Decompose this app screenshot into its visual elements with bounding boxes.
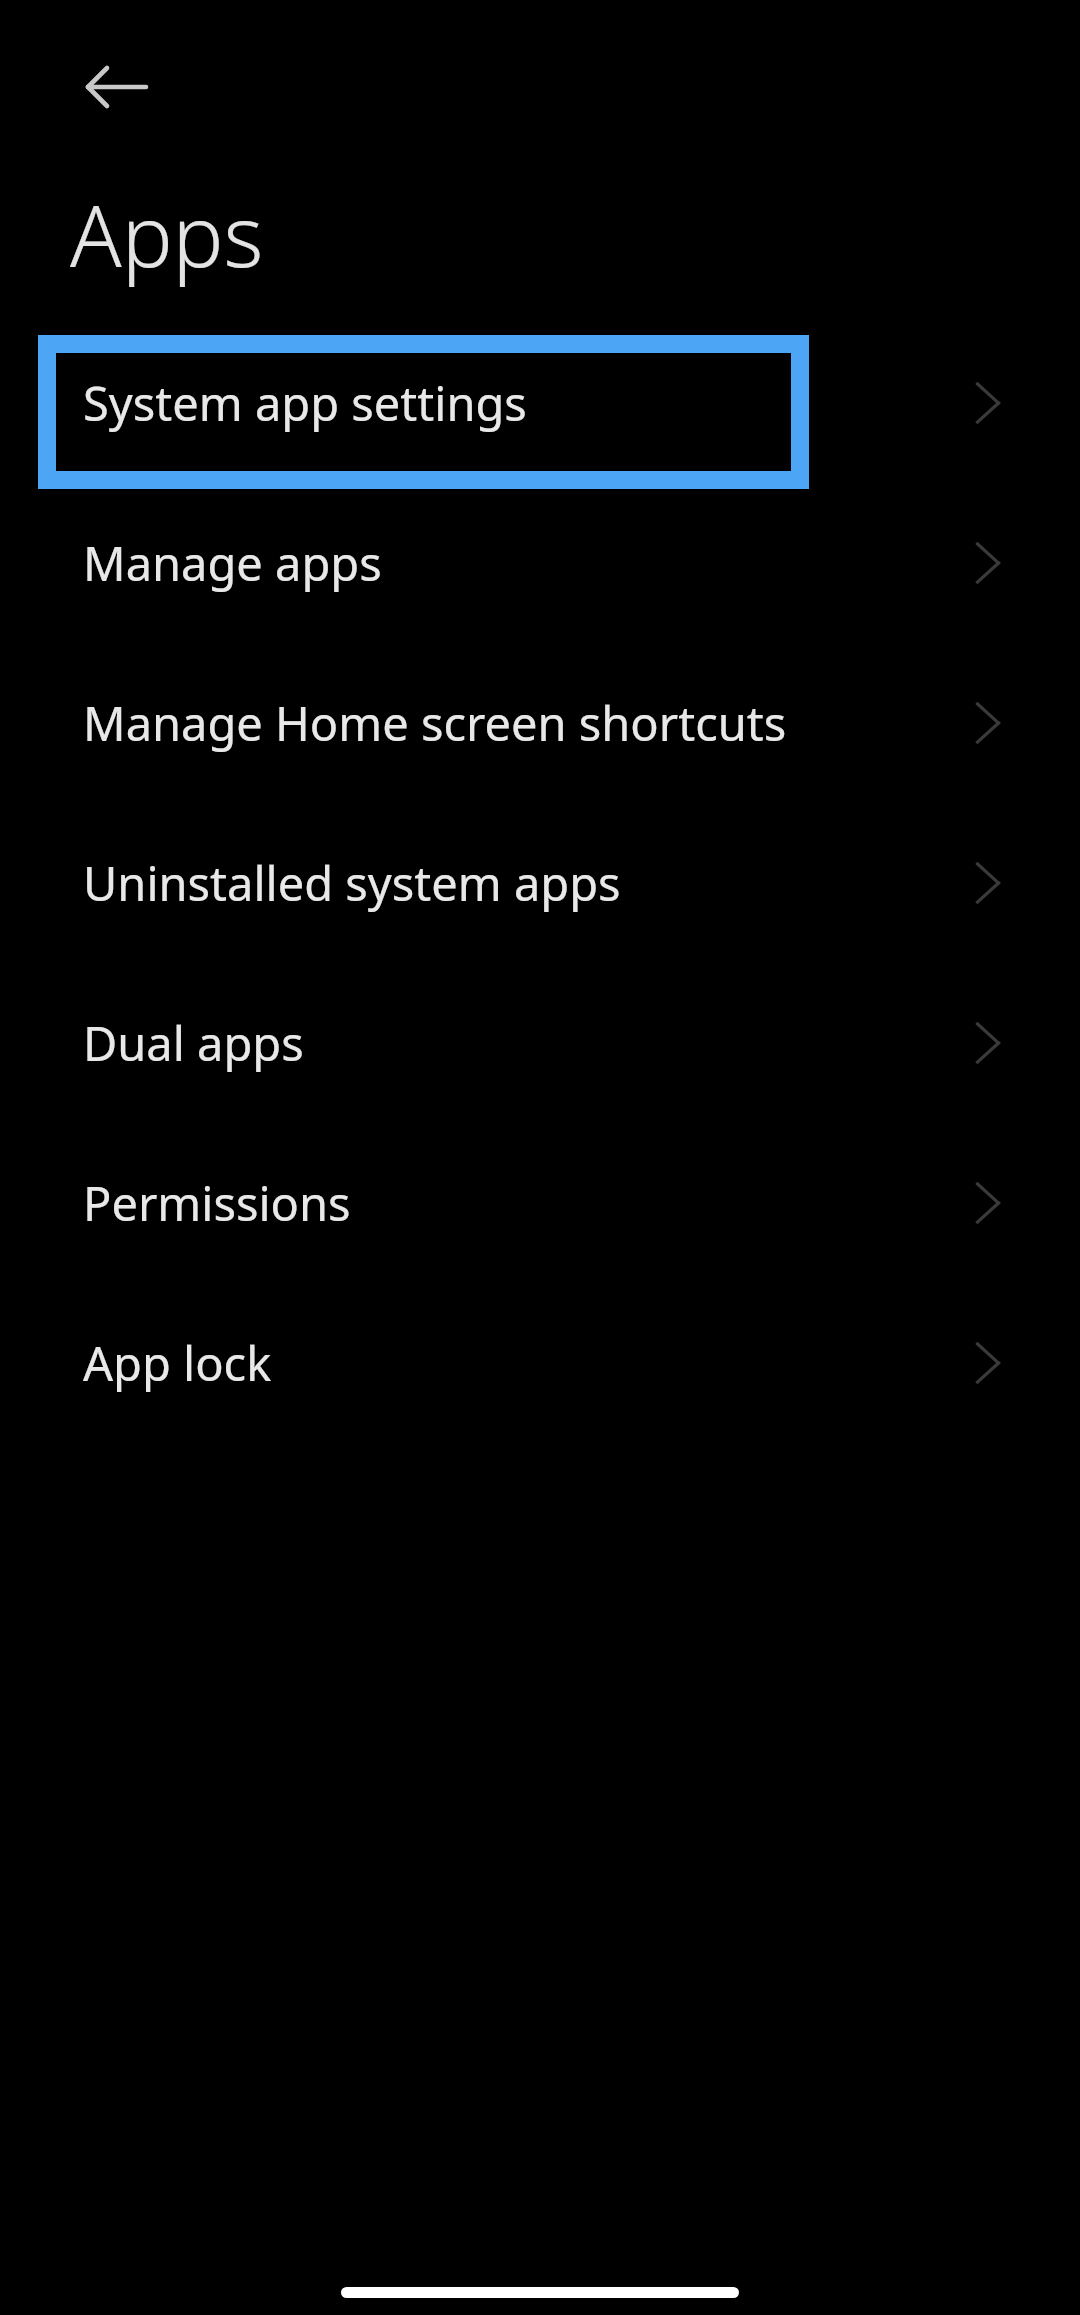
- staticText: App lock: [83, 1331, 272, 1395]
- button[interactable]: App lock: [0, 1283, 1080, 1443]
- staticText: Uninstalled system apps: [83, 851, 621, 915]
- button[interactable]: Back: [69, 39, 165, 135]
- staticText: Permissions: [83, 1171, 351, 1235]
- button[interactable]: Manage apps: [0, 483, 1080, 643]
- button[interactable]: Manage Home screen shortcuts: [0, 643, 1080, 803]
- staticText: System app settings: [83, 371, 527, 435]
- staticText: Manage Home screen shortcuts: [83, 691, 787, 755]
- staticText: Apps: [70, 176, 264, 292]
- staticText: Manage apps: [83, 531, 382, 595]
- button[interactable]: Permissions: [0, 1123, 1080, 1283]
- button[interactable]: Uninstalled system apps: [0, 803, 1080, 963]
- button[interactable]: Dual apps: [0, 963, 1080, 1123]
- staticText: Dual apps: [83, 1011, 304, 1075]
- button[interactable]: System app settings: [0, 323, 1080, 483]
